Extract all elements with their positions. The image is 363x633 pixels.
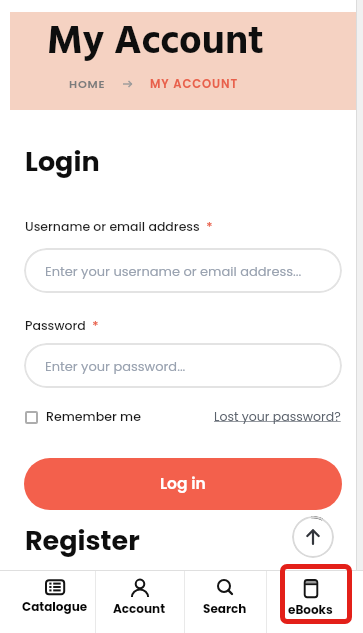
staticText: My Account <box>47 11 264 75</box>
button[interactable]: Remember me <box>25 408 141 426</box>
button[interactable]: Enter your password... <box>24 343 342 388</box>
staticText: eBooks <box>288 601 333 618</box>
button[interactable]: Lost your password? <box>214 408 341 425</box>
button[interactable]: eBooks <box>266 570 363 633</box>
staticText: Username or email address * <box>25 218 213 235</box>
staticText: Catalogue <box>22 598 88 615</box>
staticText: Log in <box>160 473 206 495</box>
staticText: Login <box>25 143 100 181</box>
button[interactable] <box>292 516 334 558</box>
staticText: Enter your username or email address... <box>45 262 302 280</box>
button[interactable]: HOME <box>69 76 106 92</box>
staticText: Register <box>25 522 140 560</box>
staticText: Enter your password... <box>45 357 186 375</box>
staticText: Remember me <box>46 408 141 426</box>
staticText: Account <box>113 600 166 617</box>
staticText: MY ACCOUNT <box>150 76 239 92</box>
button[interactable]: Log in <box>24 458 342 510</box>
staticText: Password * <box>25 317 99 334</box>
button[interactable]: Account <box>95 570 184 633</box>
button[interactable]: Search <box>184 570 266 633</box>
button[interactable]: Catalogue <box>0 570 95 633</box>
staticText: Search <box>203 600 247 617</box>
button[interactable]: Enter your username or email address... <box>24 248 342 293</box>
